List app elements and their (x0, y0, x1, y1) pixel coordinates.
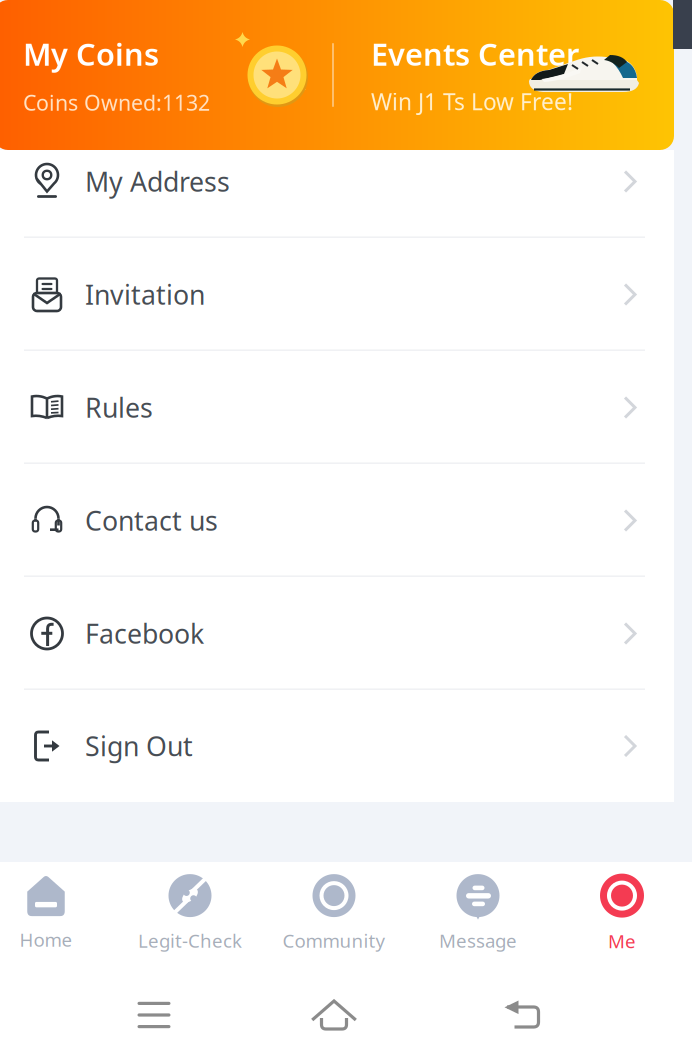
staticText: Me (608, 929, 636, 953)
button[interactable]: Home (274, 983, 394, 1047)
button[interactable]: Legit-Check (118, 863, 262, 963)
button[interactable]: Home (0, 863, 118, 963)
staticText: Coins Owned:1132 (23, 88, 210, 116)
staticText: Legit-Check (138, 928, 242, 953)
staticText: My Address (85, 164, 230, 199)
staticText: Facebook (85, 616, 204, 651)
button[interactable]: Sign Out (0, 690, 674, 802)
staticText: Events Center (371, 34, 579, 74)
staticText: My Coins (23, 33, 159, 74)
button[interactable]: Recents (94, 983, 214, 1047)
button[interactable]: Contact us (0, 464, 674, 577)
staticText: Contact us (85, 503, 218, 538)
staticText: Rules (85, 390, 153, 425)
staticText: Win J1 Ts Low Free! (371, 86, 573, 116)
staticText: Community (282, 928, 385, 953)
button[interactable]: Community (262, 863, 406, 963)
button[interactable]: My Coins (0, 0, 332, 150)
button[interactable]: Invitation (0, 238, 674, 351)
button[interactable]: My Address (0, 125, 674, 238)
button[interactable]: Rules (0, 351, 674, 464)
staticText: Invitation (85, 277, 205, 312)
button[interactable]: Me (550, 863, 692, 963)
staticText: Home (19, 927, 72, 952)
staticText: Message (439, 928, 517, 953)
button[interactable]: Facebook (0, 577, 674, 690)
button[interactable]: Events Center (334, 0, 674, 150)
button[interactable]: Message (406, 863, 550, 963)
staticText: Sign Out (85, 728, 193, 764)
button[interactable]: Back (462, 983, 582, 1047)
